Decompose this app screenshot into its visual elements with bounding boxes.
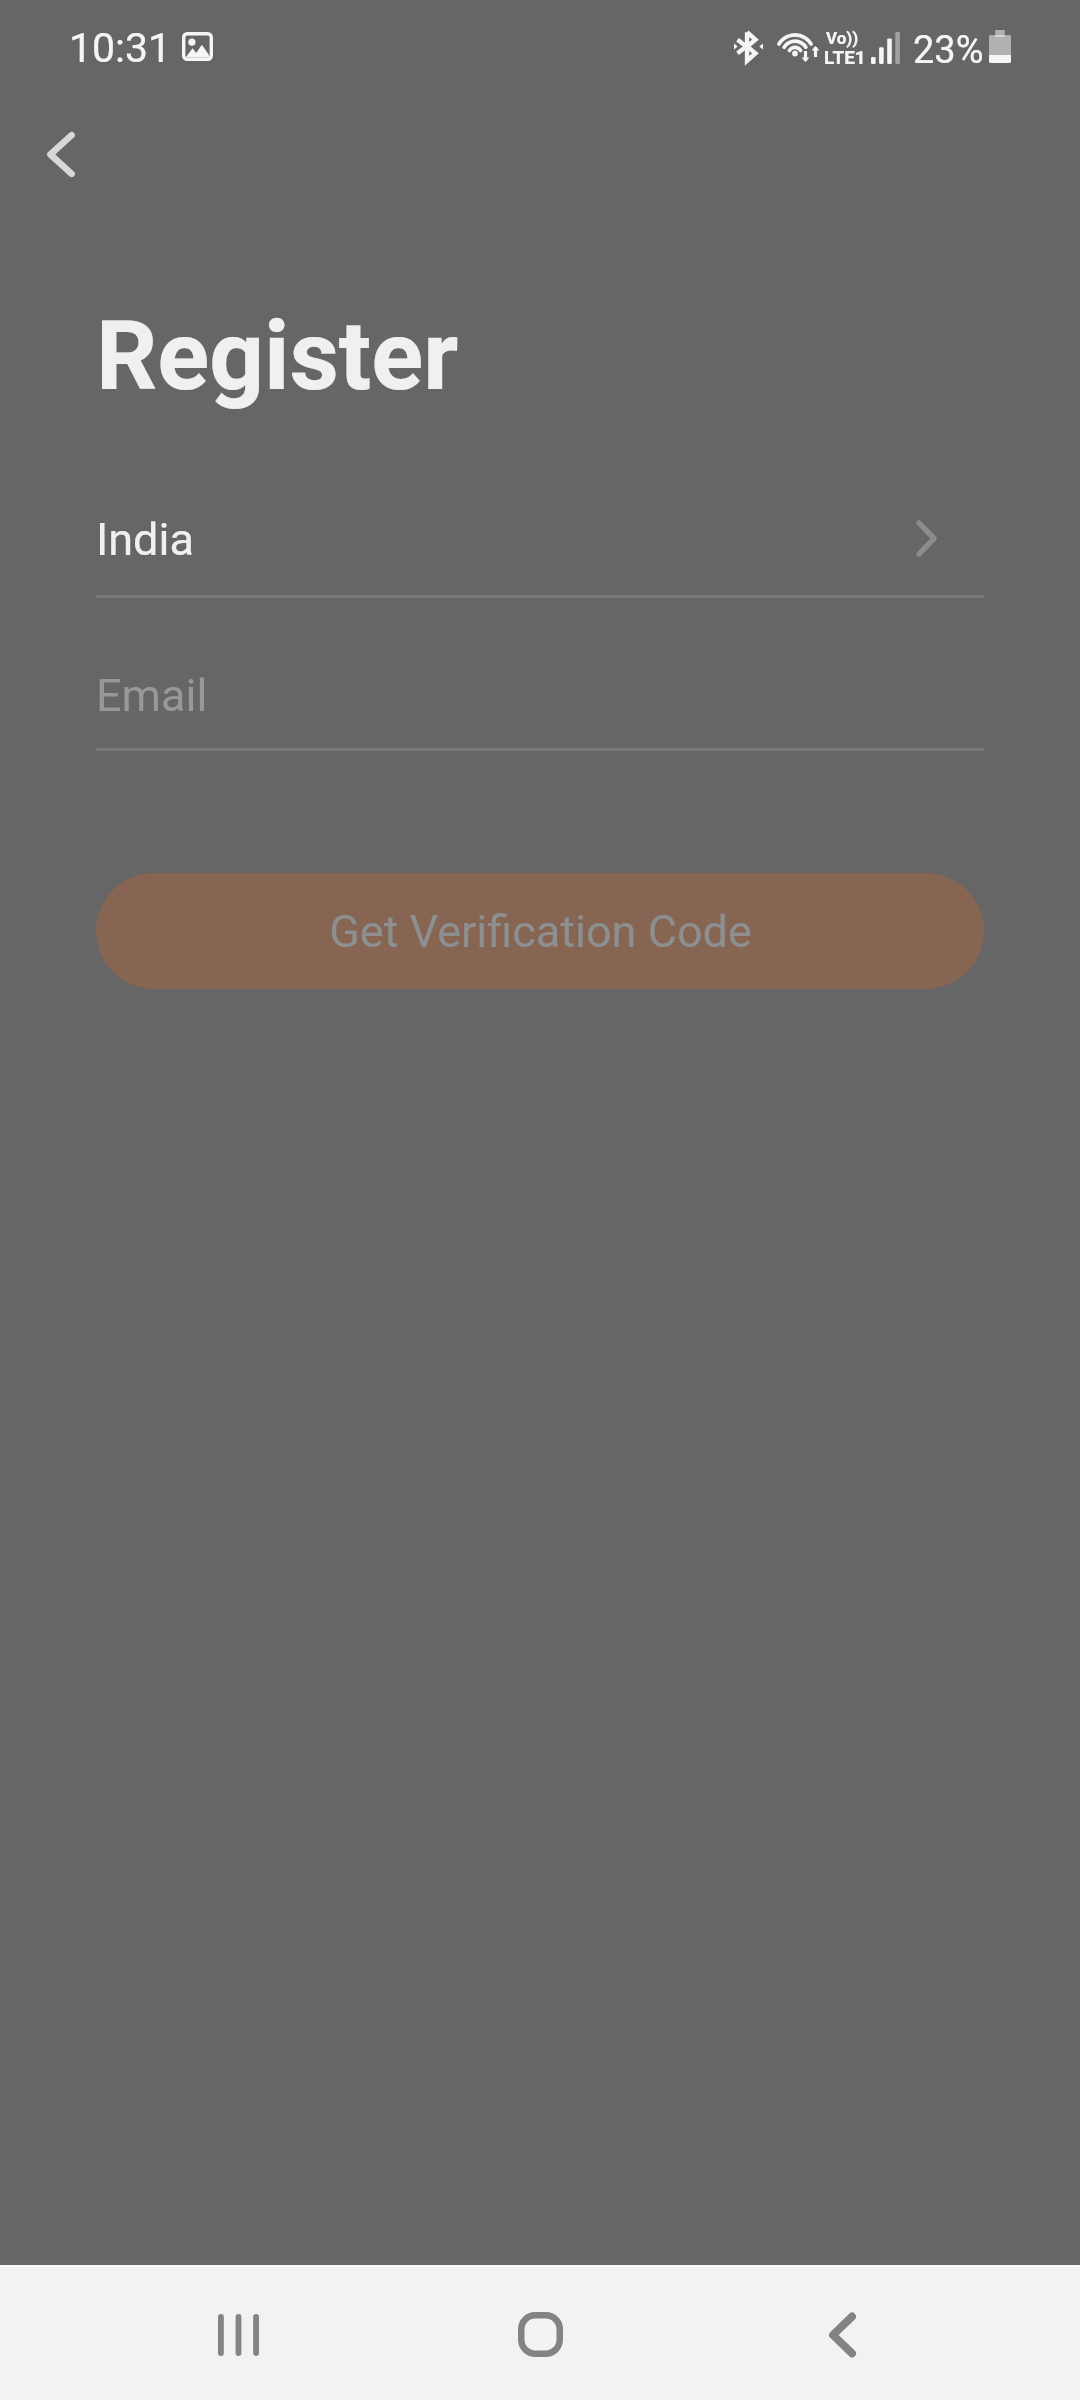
staticText: Register — [96, 300, 459, 413]
staticText: LTE1 — [824, 46, 866, 68]
staticText: India — [96, 513, 194, 566]
button[interactable]: Recent apps — [168, 2268, 308, 2400]
staticText: Vo)) — [826, 28, 859, 48]
button[interactable]: Email — [96, 665, 984, 725]
button[interactable]: India — [96, 509, 984, 569]
staticText: Email — [96, 669, 208, 722]
staticText: Get Verification Code — [329, 905, 752, 958]
button[interactable]: Get Verification Code — [96, 873, 984, 989]
staticText: 10:31 — [69, 24, 172, 72]
button[interactable]: Back — [11, 104, 111, 204]
button[interactable]: Home — [470, 2268, 610, 2400]
staticText: 23% — [913, 28, 984, 73]
button[interactable]: Back — [772, 2268, 912, 2400]
